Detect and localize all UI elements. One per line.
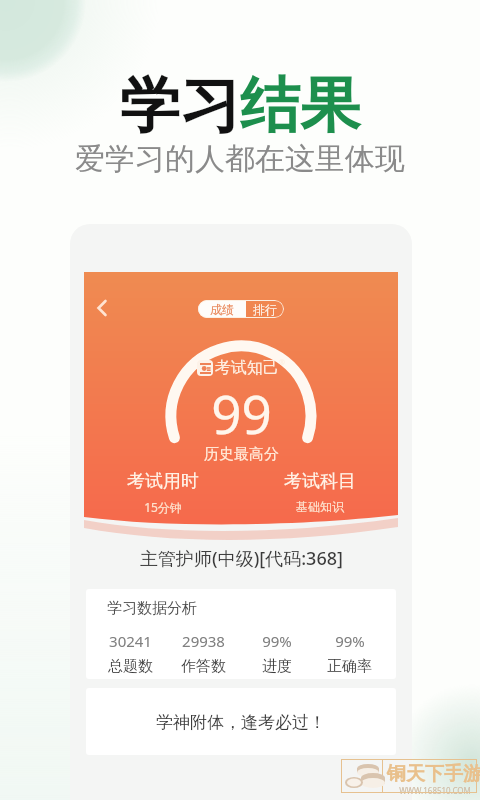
button[interactable]: 学神附体，逢考必过！: [86, 688, 396, 755]
staticText: 考试知己: [215, 358, 279, 378]
staticText: 29938: [182, 631, 225, 651]
staticText: 99%: [262, 631, 292, 651]
staticText: 总题数: [108, 657, 153, 676]
staticText: 成绩: [210, 302, 234, 317]
staticText: 正确率: [327, 657, 372, 676]
button[interactable]: Back: [90, 296, 114, 320]
staticText: 历史最高分: [204, 445, 279, 464]
staticText: 学习数据分析: [107, 599, 197, 618]
button[interactable]: 成绩: [198, 300, 246, 318]
staticText: 结果: [240, 68, 360, 144]
staticText: 考试用时: [127, 470, 199, 493]
staticText: 30241: [109, 631, 152, 651]
staticText: 考试科目: [284, 470, 356, 493]
staticText: 学习: [120, 68, 240, 144]
staticText: ®: [279, 358, 285, 368]
staticText: 主管护师(中级)[代码:368]: [140, 546, 343, 571]
staticText: 99: [211, 377, 272, 449]
staticText: 99%: [335, 631, 365, 651]
staticText: 铜天下手游: [387, 762, 480, 786]
staticText: WWW.168510.COM: [399, 785, 471, 795]
staticText: 学神附体，逢考必过！: [156, 712, 326, 733]
staticText: 基础知识: [296, 499, 344, 514]
staticText: 排行: [253, 302, 277, 317]
staticText: 作答数: [181, 657, 226, 676]
button[interactable]: 排行: [246, 300, 284, 318]
staticText: 15分钟: [144, 499, 182, 515]
staticText: 爱学习的人都在这里体现: [75, 140, 405, 178]
staticText: 进度: [262, 657, 292, 676]
